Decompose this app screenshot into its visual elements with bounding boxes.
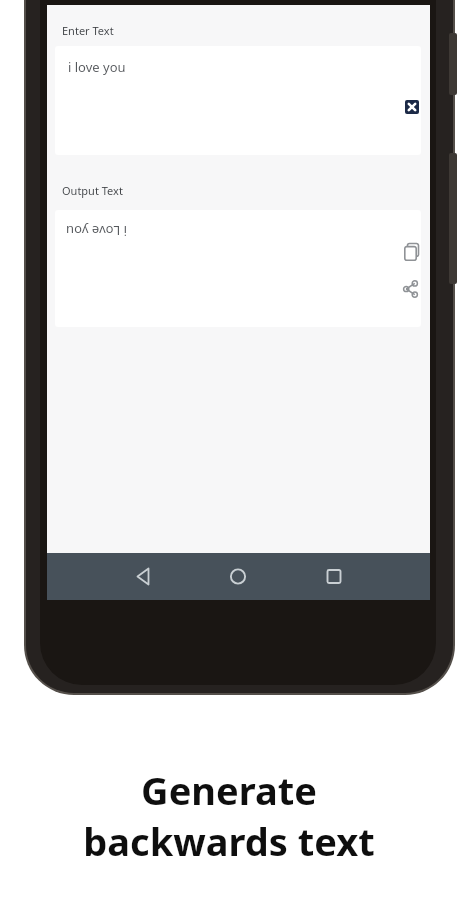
button[interactable] [321, 564, 347, 590]
staticText: Enter Text [62, 23, 114, 38]
button[interactable] [405, 100, 419, 114]
staticText: Output Text [62, 183, 123, 198]
staticText: i Love you [66, 222, 127, 240]
button[interactable] [130, 564, 156, 590]
staticText: i love you [68, 58, 126, 76]
button[interactable] [403, 280, 419, 298]
staticText: Generate backwards text [83, 764, 375, 867]
button[interactable] [404, 243, 420, 261]
button[interactable] [225, 564, 251, 590]
